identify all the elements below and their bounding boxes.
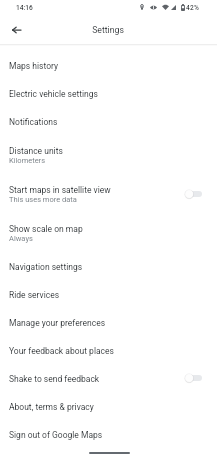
button[interactable]: Toggle [185, 189, 202, 199]
staticText: Start maps in satellite view [9, 185, 111, 195]
button[interactable]: Sign out of Google Maps [0, 421, 217, 449]
staticText: Navigation settings [9, 262, 83, 272]
staticText: Manage your preferences [9, 318, 106, 328]
button[interactable]: Shake to send feedback [0, 365, 217, 393]
staticText: Kilometers [9, 156, 46, 165]
button[interactable]: Show scale on map [0, 214, 217, 253]
button[interactable]: Notifications [0, 108, 217, 136]
staticText: 42% [186, 4, 200, 12]
staticText: This uses more data [9, 195, 77, 204]
button[interactable]: Home [89, 452, 130, 454]
staticText: Sign out of Google Maps [9, 430, 103, 440]
staticText: Settings [92, 25, 124, 35]
staticText: About, terms & privacy [9, 402, 94, 412]
button[interactable]: Maps history [0, 52, 217, 80]
staticText: Shake to send feedback [9, 374, 100, 384]
staticText: Your feedback about places [9, 346, 114, 356]
staticText: Distance units [9, 146, 63, 156]
button[interactable]: Manage your preferences [0, 309, 217, 337]
button[interactable]: About, terms & privacy [0, 393, 217, 421]
button[interactable]: Ride services [0, 281, 217, 309]
staticText: Show scale on map [9, 224, 83, 234]
button[interactable]: Start maps in satellite view [0, 175, 217, 214]
button[interactable]: Toggle [185, 373, 202, 383]
staticText: Maps history [9, 61, 58, 71]
button[interactable]: Your feedback about places [0, 337, 217, 365]
staticText: Notifications [9, 117, 58, 127]
staticText: Electric vehicle settings [9, 89, 98, 99]
staticText: 14:16 [16, 4, 33, 12]
staticText: Always [9, 234, 33, 243]
button[interactable]: Navigation settings [0, 253, 217, 281]
button[interactable]: Distance units [0, 136, 217, 175]
button[interactable]: Back [4, 18, 28, 42]
staticText: Ride services [9, 290, 60, 300]
button[interactable]: Electric vehicle settings [0, 80, 217, 108]
